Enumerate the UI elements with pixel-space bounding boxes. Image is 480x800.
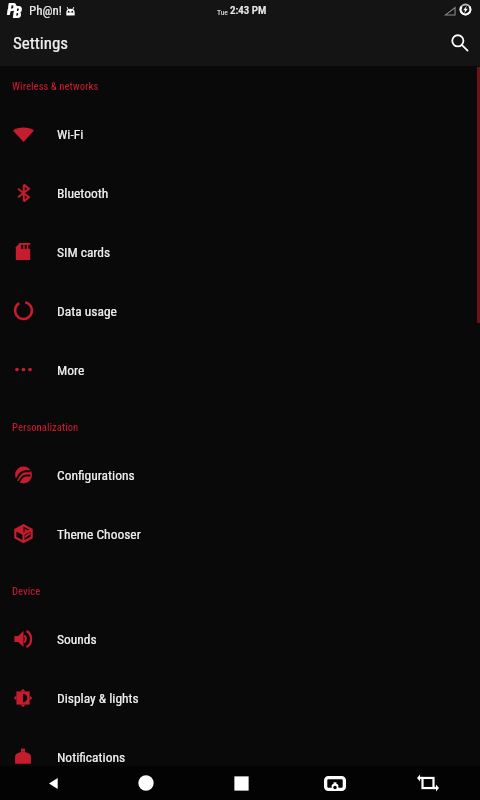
button[interactable]: Resize [404,766,452,800]
button[interactable]: Notifications [0,727,480,786]
staticText: Settings [13,33,69,53]
staticText: Tue [217,8,228,17]
button[interactable]: Back [29,766,77,800]
staticText: Display & lights [57,690,139,706]
staticText: Wi-Fi [57,126,84,142]
staticText: Personalization [12,421,79,434]
staticText: B [13,3,22,22]
button[interactable]: Home [122,766,170,800]
staticText: Notifications [57,749,126,765]
button[interactable]: Recent apps [217,766,265,800]
staticText: Wireless & networks [12,80,99,93]
button[interactable]: Theme Chooser [0,504,480,563]
staticText: 2:43 PM [230,4,267,17]
button[interactable]: Sounds [0,609,480,668]
staticText: Theme Chooser [57,526,141,542]
staticText: P [7,0,17,19]
staticText: Ph@n! [29,3,62,18]
button[interactable]: Search [438,21,480,65]
button[interactable]: Configurations [0,445,480,504]
staticText: Device [12,585,41,598]
button[interactable]: Data usage [0,281,480,340]
staticText: Configurations [57,467,135,483]
staticText: Data usage [57,303,117,319]
staticText: More [57,362,85,378]
staticText: Sounds [57,631,97,647]
button[interactable]: Display & lights [0,668,480,727]
staticText: Bluetooth [57,185,109,201]
button[interactable]: Screenshot [311,766,359,800]
button[interactable]: Bluetooth [0,163,480,222]
button[interactable]: Wi-Fi [0,104,480,163]
staticText: SIM cards [57,244,111,260]
button[interactable]: More [0,340,480,399]
button[interactable]: SIM cards [0,222,480,281]
